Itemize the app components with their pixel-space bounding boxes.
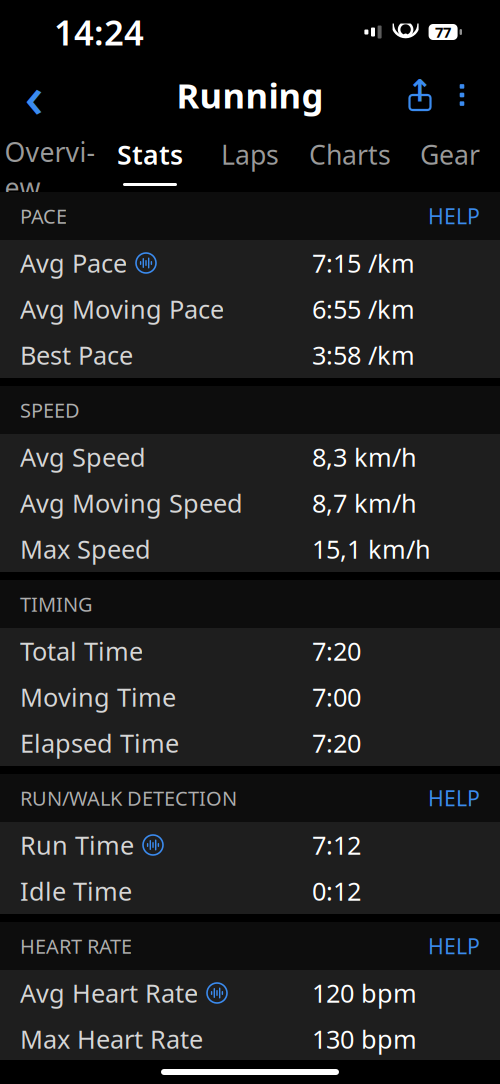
button[interactable]: Back — [10, 70, 58, 120]
staticText: TIMING — [20, 591, 93, 617]
staticText: Running — [176, 72, 323, 118]
staticText: Charts — [309, 137, 391, 172]
staticText: HELP — [428, 784, 480, 812]
staticText: Avg Speed — [20, 440, 146, 474]
button[interactable]: Avg Pace — [0, 240, 500, 286]
staticText: 7:20 — [312, 726, 361, 760]
staticText: 6:55 /km — [312, 292, 415, 326]
button[interactable]: More options — [442, 70, 482, 120]
button[interactable]: Max Speed — [0, 526, 500, 572]
staticText: 7:00 — [312, 680, 361, 714]
button[interactable]: Elapsed Time — [0, 720, 500, 766]
staticText: 7:12 — [312, 828, 361, 862]
button[interactable]: Gear — [400, 126, 500, 192]
staticText: Max Speed — [20, 532, 151, 566]
button[interactable]: Moving Time — [0, 674, 500, 720]
button[interactable]: Laps — [200, 126, 300, 192]
staticText: 14:24 — [54, 9, 144, 55]
staticText: Overview — [4, 134, 95, 205]
staticText: 130 bpm — [312, 1022, 417, 1056]
button[interactable]: Avg Heart Rate — [0, 970, 500, 1016]
staticText: 3:58 /km — [312, 338, 415, 372]
staticText: 120 bpm — [312, 976, 417, 1010]
staticText: HELP — [428, 202, 480, 230]
button[interactable]: Idle Time — [0, 868, 500, 914]
staticText: Gear — [420, 137, 480, 172]
staticText: Avg Pace — [20, 246, 127, 280]
staticText: Stats — [117, 137, 183, 172]
button[interactable]: HELP — [414, 776, 480, 820]
staticText: Elapsed Time — [20, 726, 179, 760]
button[interactable]: Stats — [100, 126, 200, 192]
staticText: RUN/WALK DETECTION — [20, 785, 237, 811]
button[interactable]: HELP — [414, 924, 480, 968]
staticText: Avg Heart Rate — [20, 976, 198, 1010]
staticText: 8,7 km/h — [312, 486, 417, 520]
button[interactable]: HELP — [414, 194, 480, 238]
staticText: 15,1 km/h — [312, 532, 431, 566]
button[interactable]: Best Pace — [0, 332, 500, 378]
staticText: Total Time — [20, 634, 143, 668]
button[interactable]: Avg Speed — [0, 434, 500, 480]
staticText: Best Pace — [20, 338, 133, 372]
button[interactable]: Charts — [300, 126, 400, 192]
button[interactable]: Total Time — [0, 628, 500, 674]
staticText: 0:12 — [312, 874, 361, 908]
staticText: HELP — [428, 932, 480, 960]
staticText: Avg Moving Speed — [20, 486, 243, 520]
button[interactable]: Run Time — [0, 822, 500, 868]
button[interactable]: Avg Moving Pace — [0, 286, 500, 332]
staticText: 8,3 km/h — [312, 440, 417, 474]
staticText: Idle Time — [20, 874, 132, 908]
staticText: Laps — [221, 137, 279, 172]
staticText: Max Heart Rate — [20, 1022, 203, 1056]
staticText: SPEED — [20, 397, 80, 423]
staticText: PACE — [20, 203, 67, 229]
staticText: 7:15 /km — [312, 246, 415, 280]
staticText: Moving Time — [20, 680, 176, 714]
staticText: HEART RATE — [20, 933, 132, 959]
button[interactable]: Share — [398, 70, 442, 120]
button[interactable]: Avg Moving Speed — [0, 480, 500, 526]
button[interactable]: Max Heart Rate — [0, 1016, 500, 1062]
staticText: Run Time — [20, 828, 134, 862]
staticText: ↑ — [407, 74, 433, 108]
button[interactable]: Overview — [0, 126, 100, 192]
staticText: ‹ — [24, 56, 43, 134]
staticText: Avg Moving Pace — [20, 292, 224, 326]
staticText: 7:20 — [312, 634, 361, 668]
staticText: 77 — [435, 22, 451, 42]
